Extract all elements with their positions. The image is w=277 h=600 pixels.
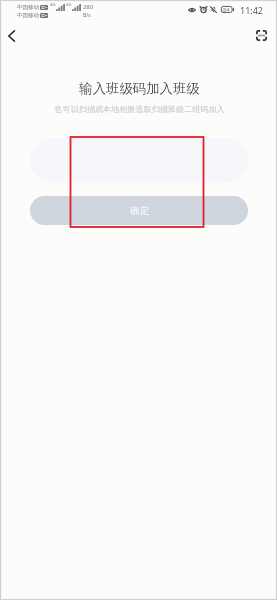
staticText: 也可以扫描或本地相册选取扫描班级二维码加入: [1, 104, 277, 114]
staticText: B/s: [83, 11, 91, 18]
staticText: 4G: [50, 2, 56, 8]
button[interactable]: Scan QR code: [250, 24, 273, 47]
staticText: 中国移动: [17, 4, 39, 11]
staticText: 11:42: [240, 4, 264, 16]
staticText: 280: [83, 3, 93, 11]
button[interactable]: [30, 138, 248, 183]
button[interactable]: 确定: [30, 196, 248, 225]
staticText: 确定: [130, 205, 149, 217]
staticText: 中国移动: [17, 12, 39, 19]
button[interactable]: Back: [0, 24, 23, 47]
staticText: 84: [223, 6, 230, 13]
staticText: 输入班级码加入班级: [1, 80, 277, 97]
staticText: 4G: [66, 2, 72, 8]
